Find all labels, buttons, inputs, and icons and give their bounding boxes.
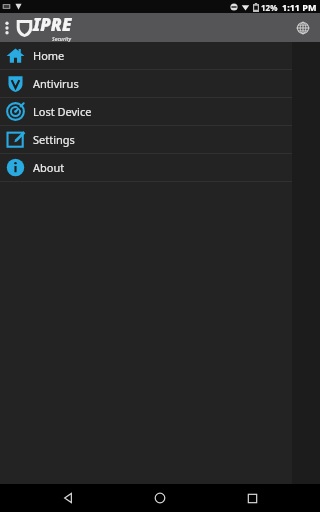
button[interactable]: Web: [292, 17, 314, 39]
button[interactable]: Lost Device: [0, 98, 292, 125]
staticText: About: [33, 160, 65, 175]
button[interactable]: More options: [0, 13, 14, 42]
button[interactable]: About: [0, 154, 292, 181]
staticText: Home: [33, 48, 65, 63]
staticText: 12%: [261, 2, 278, 13]
staticText: 1:11 PM: [282, 1, 317, 13]
staticText: Antivirus: [33, 76, 79, 91]
button[interactable]: Antivirus: [0, 70, 292, 97]
button[interactable]: Recents: [228, 484, 276, 512]
staticText: Lost Device: [33, 104, 92, 119]
button[interactable]: Home: [0, 42, 292, 69]
staticText: IPRE: [33, 13, 72, 36]
staticText: Security: [52, 36, 72, 42]
staticText: Settings: [33, 132, 75, 147]
button[interactable]: Back: [44, 484, 92, 512]
button[interactable]: Settings: [0, 126, 292, 153]
button[interactable]: Home: [136, 484, 184, 512]
